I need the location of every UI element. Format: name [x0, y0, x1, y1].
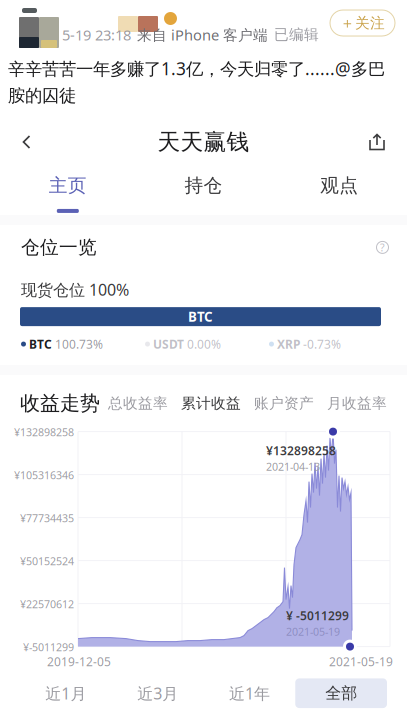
- staticText: ＋关注: [340, 14, 385, 32]
- button[interactable]: 近1月: [20, 678, 112, 709]
- button[interactable]: ＋关注: [330, 10, 395, 36]
- staticText: 2021-05-19: [286, 624, 340, 639]
- staticText: 5-19 23:18: [62, 25, 131, 44]
- staticText: 仓位一览: [21, 236, 97, 259]
- staticText: 账户资产: [254, 394, 314, 412]
- button[interactable]: 月收益率: [327, 394, 387, 412]
- button[interactable]: 全部: [295, 678, 387, 708]
- staticText: 天天赢钱: [157, 128, 249, 156]
- staticText: 0.00%: [187, 336, 221, 352]
- staticText: 月收益率: [327, 394, 387, 412]
- staticText: ¥105316346: [14, 468, 74, 482]
- button[interactable]: 分享: [341, 122, 385, 162]
- staticText: 持仓: [184, 174, 222, 197]
- staticText: 已编辑: [274, 26, 319, 44]
- staticText: ¥-5011299: [23, 640, 74, 654]
- staticText: ¥50152524: [20, 554, 74, 568]
- staticText: 总收益率: [108, 394, 168, 412]
- staticText: 累计收益: [181, 394, 241, 412]
- staticText: -0.73%: [303, 336, 341, 352]
- button[interactable]: 总收益率: [108, 394, 168, 412]
- staticText: ¥77734435: [20, 511, 74, 525]
- button[interactable]: 近3月: [112, 678, 204, 709]
- staticText: USDT: [153, 336, 184, 352]
- staticText: 近1年: [229, 683, 270, 704]
- staticText: 辛辛苦苦一年多赚了1.3亿，今天归零了......@多巴: [8, 57, 385, 80]
- staticText: 近1月: [45, 683, 86, 704]
- button[interactable]: 返回: [22, 122, 66, 162]
- staticText: 2021-05-19: [329, 654, 393, 669]
- staticText: 2019-12-05: [47, 654, 111, 669]
- button[interactable]: 主页: [0, 162, 136, 213]
- staticText: BTC: [188, 308, 213, 325]
- staticText: 观点: [320, 174, 358, 197]
- staticText: ¥132898258: [14, 425, 74, 439]
- staticText: ¥132898258: [266, 443, 336, 458]
- staticText: 近3月: [137, 683, 178, 704]
- button[interactable]: 累计收益: [181, 394, 241, 412]
- staticText: BTC: [29, 336, 52, 352]
- button[interactable]: 持仓: [136, 162, 271, 213]
- staticText: 现货仓位 100%: [21, 279, 129, 300]
- staticText: 主页: [49, 174, 87, 197]
- staticText: ?: [380, 240, 385, 254]
- staticText: 100.73%: [55, 336, 103, 352]
- button[interactable]: 说明: [376, 241, 389, 254]
- staticText: 2021-04-13: [266, 459, 320, 474]
- staticText: XRP: [277, 336, 300, 352]
- button[interactable]: 近1年: [203, 678, 295, 709]
- staticText: 收益走势: [20, 391, 100, 416]
- staticText: ¥22570612: [20, 597, 74, 611]
- staticText: 全部: [325, 683, 357, 703]
- button[interactable]: 观点: [271, 162, 407, 213]
- button[interactable]: 账户资产: [254, 394, 314, 412]
- staticText: 胺的囚徒: [8, 85, 76, 106]
- staticText: ¥ -5011299: [286, 608, 349, 623]
- staticText: 来自 iPhone 客户端: [137, 25, 268, 44]
